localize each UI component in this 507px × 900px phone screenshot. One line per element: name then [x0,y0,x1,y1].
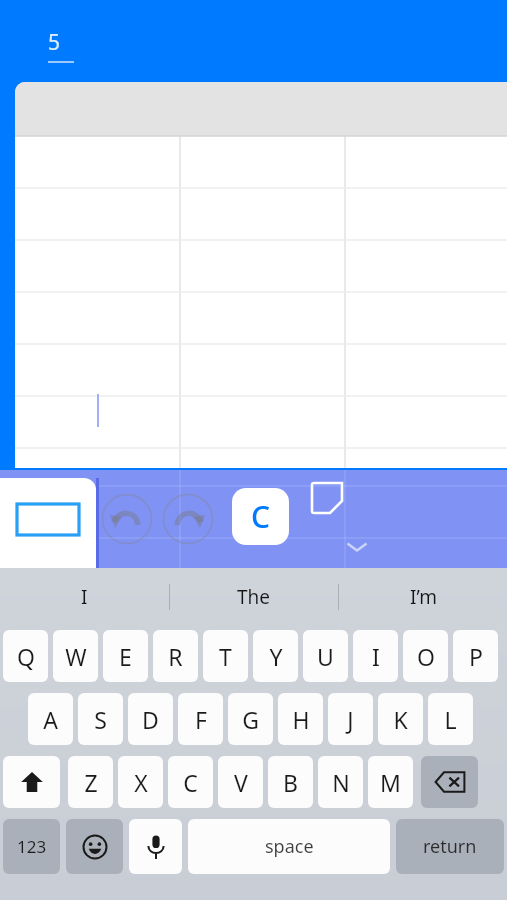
button[interactable]: The [170,568,338,626]
button[interactable]: C [168,756,213,808]
staticText: D [142,704,159,735]
staticText: M [380,767,401,798]
button[interactable]: U [303,630,348,682]
staticText: N [332,767,350,798]
button[interactable]: J [328,693,373,745]
button[interactable]: H [278,693,323,745]
button[interactable]: K [378,693,423,745]
staticText: Q [17,641,35,672]
staticText: Z [84,767,98,798]
button[interactable]: T [203,630,248,682]
staticText: L [444,704,457,735]
staticText: C [183,767,198,798]
button[interactable]: R [153,630,198,682]
staticText: B [283,767,298,798]
button[interactable]: Undo [101,493,153,545]
staticText: return [423,834,477,859]
staticText: X [134,767,148,798]
staticText: E [119,641,132,672]
staticText: W [65,641,87,672]
button[interactable]: L [428,693,473,745]
staticText: P [469,641,483,672]
staticText: S [94,704,107,735]
staticText: K [393,704,408,735]
button[interactable]: X [118,756,163,808]
button[interactable]: Q [3,630,48,682]
button[interactable]: Expand [340,536,374,558]
button[interactable]: Emoji [66,819,123,874]
button[interactable]: I [353,630,398,682]
button[interactable]: I’m [339,568,507,626]
staticText: I [372,641,380,672]
button[interactable]: W [53,630,98,682]
button[interactable]: Paste [306,477,348,519]
staticText: A [43,704,58,735]
button[interactable]: 5 [44,28,78,63]
staticText: O [417,641,435,672]
button[interactable]: space [188,819,390,874]
staticText: H [292,704,310,735]
button[interactable]: N [318,756,363,808]
button[interactable]: return [396,819,504,874]
button[interactable]: Backspace [421,756,478,808]
button[interactable]: 123 [3,819,60,874]
button[interactable]: P [453,630,498,682]
button[interactable]: I [0,568,169,626]
button[interactable]: Shift [3,756,60,808]
button[interactable]: E [103,630,148,682]
button[interactable]: A [28,693,73,745]
staticText: T [219,641,232,672]
button[interactable]: O [403,630,448,682]
button[interactable]: D [128,693,173,745]
staticText: F [195,704,207,735]
button[interactable]: S [78,693,123,745]
staticText: I’m [410,584,437,610]
staticText: I [81,584,88,610]
button[interactable]: Redo [162,493,214,545]
button[interactable]: B [268,756,313,808]
button[interactable]: Dictation [129,819,182,874]
staticText: space [265,834,314,859]
button[interactable]: Z [68,756,113,808]
staticText: C [251,496,271,537]
staticText: Y [269,641,283,672]
button[interactable]: Cell selection [0,478,96,568]
staticText: U [317,641,334,672]
button[interactable]: F [178,693,223,745]
button[interactable]: M [368,756,413,808]
staticText: V [234,767,248,798]
button[interactable]: G [228,693,273,745]
staticText: The [237,584,271,610]
button[interactable]: Copy [232,488,289,545]
staticText: 123 [17,835,47,858]
staticText: R [168,641,183,672]
staticText: 5 [48,28,61,57]
button[interactable]: V [218,756,263,808]
staticText: G [242,704,259,735]
staticText: J [347,704,354,735]
button[interactable]: Y [253,630,298,682]
